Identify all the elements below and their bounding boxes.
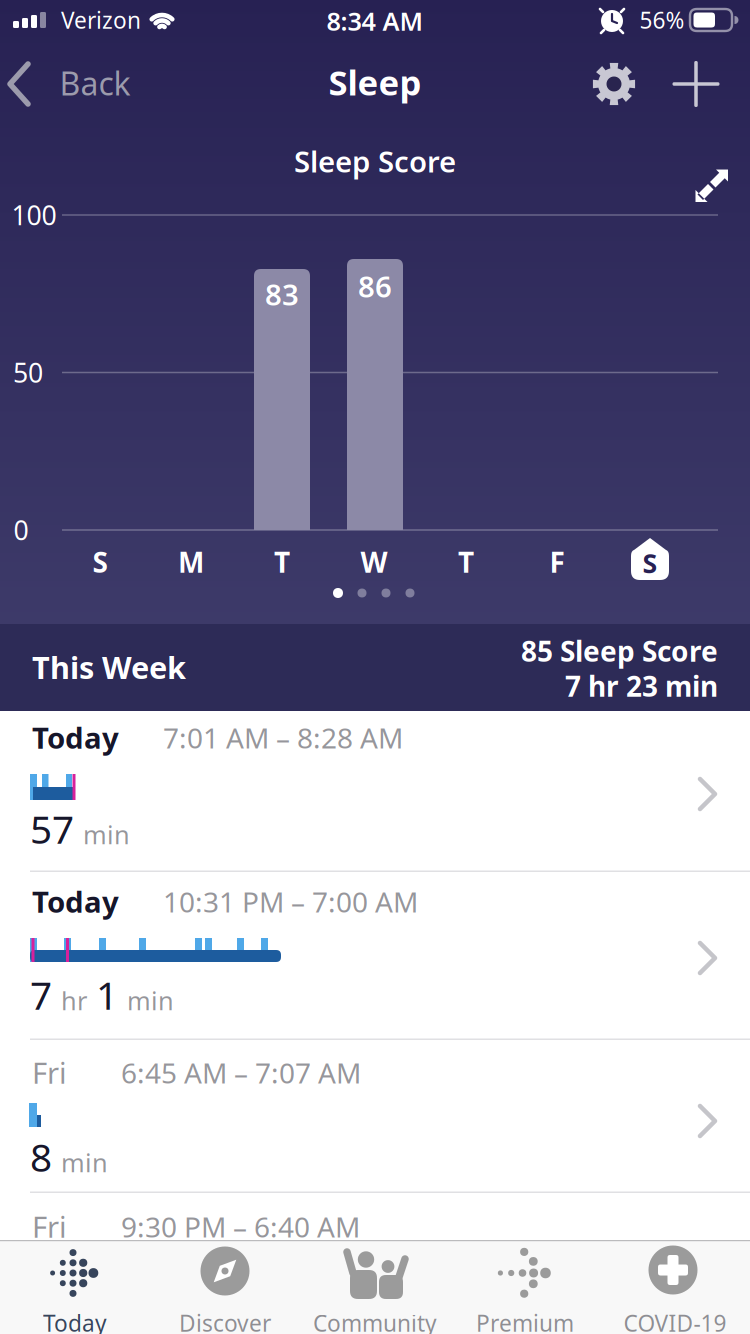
staticText: 8 <box>30 1131 52 1182</box>
staticText: Today <box>32 718 119 757</box>
button[interactable] <box>588 58 640 110</box>
staticText: 85 Sleep Score <box>521 632 718 670</box>
staticText: Fri <box>32 1053 67 1092</box>
staticText: Today <box>43 1308 107 1334</box>
button[interactable]: Today <box>0 872 750 1040</box>
staticText: S <box>642 545 657 581</box>
staticText: Community <box>313 1308 437 1334</box>
staticText: min <box>83 818 130 851</box>
button[interactable]: Fri <box>0 1193 750 1334</box>
staticText: Sleep Score <box>294 141 456 180</box>
staticText: 83 <box>265 274 299 313</box>
staticText: 7 hr 23 min <box>565 667 718 705</box>
staticText: 7 <box>30 969 52 1020</box>
staticText: hr <box>61 984 87 1017</box>
staticText: W <box>360 543 387 581</box>
staticText: This Week <box>32 647 186 687</box>
staticText: 8:34 AM <box>326 4 423 38</box>
staticText: 56% <box>639 5 684 35</box>
staticText: Verizon <box>61 5 141 35</box>
staticText: M <box>178 543 204 581</box>
staticText: Back <box>59 62 130 104</box>
staticText: Sleep <box>328 59 421 105</box>
staticText: min <box>127 984 174 1017</box>
button[interactable]: Premium <box>450 1240 600 1334</box>
staticText: 1 <box>96 969 118 1020</box>
staticText: COVID-19 <box>623 1308 726 1334</box>
staticText: 100 <box>11 197 56 233</box>
staticText: 10:31 PM – 7:00 AM <box>163 883 418 920</box>
staticText: Today <box>32 882 119 921</box>
button[interactable]: Back <box>5 58 155 110</box>
staticText: Fri <box>32 1207 67 1246</box>
button[interactable]: Discover <box>150 1240 300 1334</box>
staticText: T <box>274 543 290 581</box>
staticText: Discover <box>179 1308 271 1334</box>
staticText: S <box>92 543 107 581</box>
staticText: F <box>549 543 564 581</box>
staticText: 57 <box>30 803 74 854</box>
button[interactable]: Today <box>0 1240 150 1334</box>
staticText: 0 <box>13 512 28 548</box>
button[interactable]: Today <box>0 711 750 872</box>
staticText: 6:45 AM – 7:07 AM <box>121 1054 361 1091</box>
staticText: Premium <box>476 1308 574 1334</box>
staticText: 9:30 PM – 6:40 AM <box>121 1208 360 1245</box>
button[interactable]: Fri <box>0 1040 750 1193</box>
staticText: min <box>61 1146 108 1179</box>
button[interactable]: COVID-19 <box>600 1240 750 1334</box>
staticText: 86 <box>358 266 392 305</box>
staticText: T <box>458 543 474 581</box>
button[interactable] <box>695 169 728 202</box>
staticText: 50 <box>13 355 43 390</box>
staticText: 7:01 AM – 8:28 AM <box>163 719 403 756</box>
button[interactable] <box>666 58 725 110</box>
button[interactable]: Community <box>300 1240 450 1334</box>
